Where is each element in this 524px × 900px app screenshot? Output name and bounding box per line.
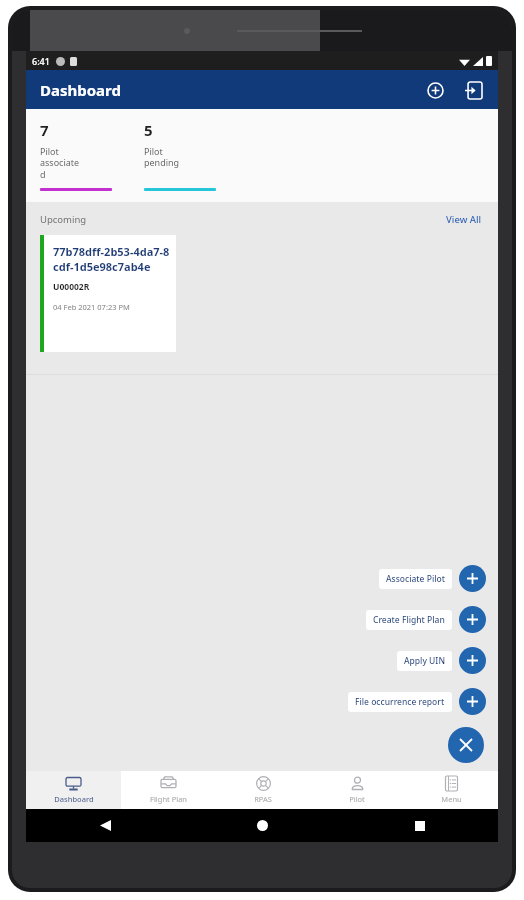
button[interactable]: Dashboard (26, 771, 121, 809)
staticText: Apply UIN (404, 655, 445, 667)
button[interactable]: 7 (40, 109, 112, 202)
button[interactable]: 77b78dff-2b53-4da7-8cdf-1d5e98c7ab4e (40, 235, 176, 352)
staticText: Pilot associate d (40, 145, 80, 181)
staticText: Pilot (349, 794, 365, 804)
staticText: Menu (441, 794, 462, 804)
staticText: Associate Pilot (386, 573, 445, 585)
staticText: File occurrence report (355, 696, 445, 708)
button[interactable]: Menu (404, 771, 498, 809)
button[interactable]: Logout (458, 75, 488, 105)
button[interactable]: Apply UIN (397, 651, 452, 671)
button[interactable]: Associate Pilot (379, 569, 452, 589)
button[interactable]: Flight Plan (121, 771, 216, 809)
staticText: Pilot pending (144, 145, 180, 169)
button[interactable]: 5 (144, 109, 216, 202)
staticText: 77b78dff-2b53-4da7-8cdf-1d5e98c7ab4e (53, 244, 170, 274)
staticText: Create Flight Plan (373, 614, 445, 626)
button[interactable]: File occurrence report (348, 692, 452, 712)
button[interactable]: Add (420, 75, 450, 105)
staticText: 04 Feb 2021 07:23 PM (53, 302, 130, 312)
button[interactable]: Create Flight Plan (366, 610, 452, 630)
staticText: 6:41 (32, 55, 50, 67)
staticText: View All (446, 213, 482, 226)
button[interactable]: Associate Pilot (459, 565, 486, 592)
button[interactable]: Recents (341, 809, 498, 842)
button[interactable]: Pilot (310, 771, 404, 809)
staticText: RPAS (254, 794, 272, 804)
staticText: Dashboard (40, 80, 121, 100)
button[interactable]: Home (184, 809, 341, 842)
staticText: 7 (40, 120, 49, 140)
button[interactable]: Apply UIN (459, 647, 486, 674)
staticText: Upcoming (40, 213, 87, 226)
button[interactable]: Create Flight Plan (459, 606, 486, 633)
staticText: Flight Plan (150, 794, 187, 804)
button[interactable]: RPAS (216, 771, 310, 809)
staticText: Dashboard (54, 794, 94, 804)
button[interactable]: View All (444, 211, 484, 228)
button[interactable]: File occurrence report (459, 688, 486, 715)
button[interactable]: Close menu (448, 727, 484, 763)
staticText: 5 (144, 120, 153, 140)
staticText: U00002R (53, 281, 90, 293)
button[interactable]: Back (26, 809, 184, 842)
